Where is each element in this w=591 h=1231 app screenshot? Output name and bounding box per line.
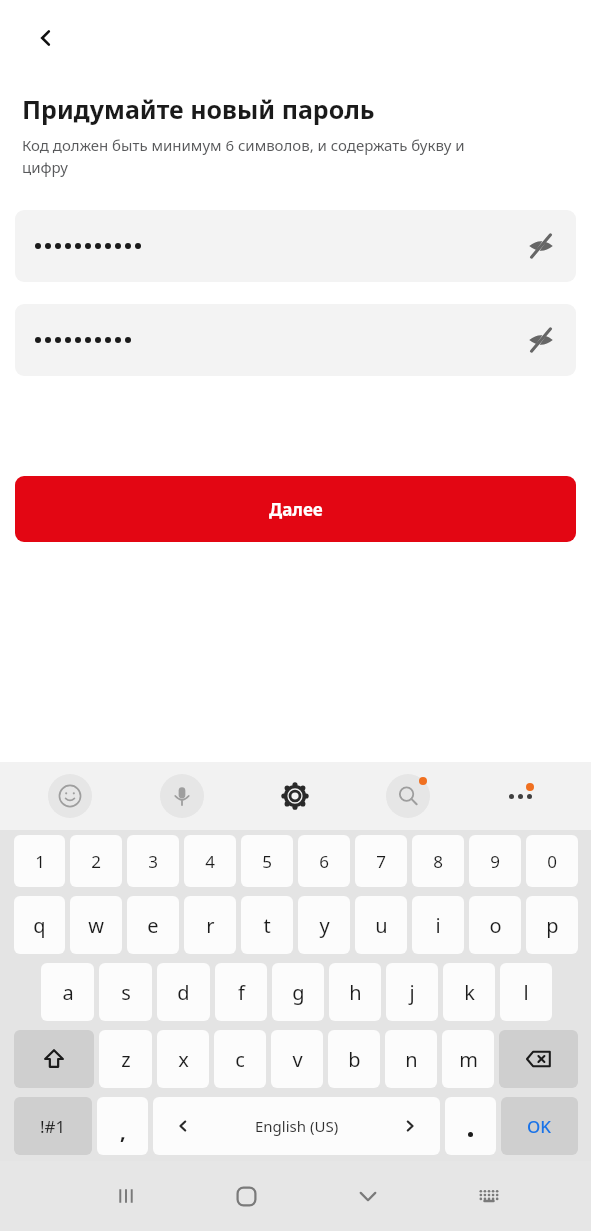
button[interactable]: z: [99, 1030, 152, 1088]
button[interactable]: q: [14, 896, 65, 954]
staticText: o: [489, 912, 502, 939]
button[interactable]: Voice input: [126, 762, 238, 830]
staticText: Код должен быть минимум 6 символов, и со…: [22, 135, 495, 178]
staticText: s: [121, 979, 131, 1006]
button[interactable]: k: [443, 963, 495, 1021]
button[interactable]: OK: [501, 1097, 578, 1155]
staticText: !#1: [40, 1115, 66, 1138]
button[interactable]: o: [469, 896, 521, 954]
staticText: b: [348, 1046, 361, 1073]
staticText: y: [319, 912, 330, 939]
button[interactable]: l: [500, 963, 552, 1021]
button[interactable]: a: [41, 963, 94, 1021]
staticText: w: [88, 912, 104, 939]
staticText: n: [405, 1046, 418, 1073]
staticText: a: [62, 979, 74, 1006]
staticText: 7: [376, 850, 386, 873]
button[interactable]: Backspace: [499, 1030, 578, 1088]
button[interactable]: English (US): [153, 1097, 440, 1155]
staticText: m: [459, 1046, 478, 1073]
button[interactable]: p: [526, 896, 578, 954]
staticText: 3: [148, 850, 158, 873]
button[interactable]: 4: [184, 835, 236, 887]
staticText: h: [349, 979, 362, 1006]
staticText: 6: [319, 850, 329, 873]
button[interactable]: f: [215, 963, 267, 1021]
button[interactable]: s: [99, 963, 152, 1021]
button[interactable]: Show password: [15, 304, 576, 376]
button[interactable]: 2: [70, 835, 122, 887]
button[interactable]: 7: [355, 835, 407, 887]
button[interactable]: Show password: [518, 317, 564, 363]
button[interactable]: Change keyboard: [428, 1161, 549, 1231]
staticText: v: [292, 1046, 303, 1073]
staticText: OK: [527, 1115, 552, 1138]
button[interactable]: i: [412, 896, 464, 954]
button[interactable]: Show password: [518, 223, 564, 269]
button[interactable]: Recent apps: [65, 1161, 186, 1231]
staticText: 9: [490, 850, 500, 873]
staticText: Придумайте новый пароль: [22, 92, 375, 126]
button[interactable]: Back: [22, 14, 70, 62]
staticText: t: [263, 912, 271, 939]
button[interactable]: Emoji: [14, 762, 126, 830]
button[interactable]: 1: [14, 835, 65, 887]
staticText: k: [464, 979, 475, 1006]
staticText: p: [546, 912, 559, 939]
staticText: 8: [433, 850, 443, 873]
button[interactable]: Keyboard settings: [238, 762, 351, 830]
button[interactable]: 9: [469, 835, 521, 887]
button[interactable]: ,: [97, 1097, 148, 1155]
button[interactable]: d: [157, 963, 210, 1021]
staticText: 4: [205, 850, 215, 873]
button[interactable]: r: [184, 896, 236, 954]
button[interactable]: w: [70, 896, 122, 954]
staticText: 1: [35, 850, 45, 873]
button[interactable]: v: [271, 1030, 323, 1088]
staticText: 5: [262, 850, 272, 873]
button[interactable]: 6: [298, 835, 350, 887]
button[interactable]: j: [386, 963, 438, 1021]
button[interactable]: [445, 1097, 496, 1155]
staticText: g: [292, 979, 305, 1006]
button[interactable]: 3: [127, 835, 179, 887]
staticText: ,: [120, 1118, 126, 1145]
staticText: Далее: [269, 498, 323, 521]
button[interactable]: x: [157, 1030, 209, 1088]
staticText: i: [435, 912, 441, 939]
button[interactable]: Hide keyboard: [307, 1161, 428, 1231]
staticText: d: [177, 979, 190, 1006]
staticText: English (US): [255, 1116, 339, 1136]
button[interactable]: !#1: [14, 1097, 92, 1155]
staticText: f: [238, 979, 245, 1006]
staticText: q: [33, 912, 46, 939]
staticText: r: [206, 912, 215, 939]
button[interactable]: h: [329, 963, 381, 1021]
button[interactable]: n: [385, 1030, 437, 1088]
staticText: z: [121, 1046, 131, 1073]
staticText: 2: [91, 850, 101, 873]
staticText: j: [409, 979, 415, 1006]
button[interactable]: g: [272, 963, 324, 1021]
staticText: l: [523, 979, 529, 1006]
button[interactable]: b: [328, 1030, 380, 1088]
button[interactable]: More options: [464, 762, 577, 830]
staticText: e: [147, 912, 159, 939]
staticText: x: [178, 1046, 189, 1073]
button[interactable]: 0: [526, 835, 578, 887]
button[interactable]: e: [127, 896, 179, 954]
button[interactable]: Home: [186, 1161, 307, 1231]
button[interactable]: u: [355, 896, 407, 954]
button[interactable]: Show password: [15, 210, 576, 282]
button[interactable]: 8: [412, 835, 464, 887]
button[interactable]: y: [298, 896, 350, 954]
button[interactable]: 5: [241, 835, 293, 887]
button[interactable]: t: [241, 896, 293, 954]
button[interactable]: Search: [351, 762, 464, 830]
staticText: u: [375, 912, 388, 939]
button[interactable]: m: [442, 1030, 494, 1088]
button[interactable]: c: [214, 1030, 266, 1088]
button[interactable]: Далее: [15, 476, 576, 542]
button[interactable]: Shift: [14, 1030, 94, 1088]
staticText: c: [235, 1046, 245, 1073]
